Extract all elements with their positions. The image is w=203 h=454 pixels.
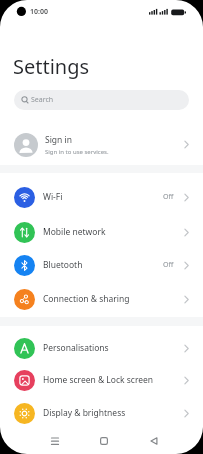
button[interactable]: Bluetooth xyxy=(0,248,203,282)
staticText: Mobile network xyxy=(43,226,106,238)
button[interactable]: Connection & sharing xyxy=(0,282,203,316)
button[interactable]: Personalisations xyxy=(0,331,203,365)
staticText: 10:00 xyxy=(30,7,48,17)
staticText: Display & brightness xyxy=(43,407,126,419)
button[interactable] xyxy=(41,428,69,454)
button[interactable]: Search xyxy=(14,90,189,110)
staticText: Personalisations xyxy=(43,342,109,354)
staticText: Sign in to use services. xyxy=(45,148,109,156)
button[interactable] xyxy=(90,428,118,454)
button[interactable]: Sign in xyxy=(0,126,203,163)
button[interactable]: Mobile network xyxy=(0,215,203,249)
button[interactable]: Display & brightness xyxy=(0,396,203,430)
staticText: Settings xyxy=(13,53,90,80)
button[interactable]: Wi-Fi xyxy=(0,180,203,214)
staticText: Off xyxy=(163,260,174,270)
staticText: Wi-Fi xyxy=(43,191,63,203)
staticText: Sign in xyxy=(45,134,72,146)
button[interactable] xyxy=(140,428,168,454)
staticText: Home screen & Lock screen xyxy=(43,374,154,386)
staticText: Bluetooth xyxy=(43,259,83,271)
staticText: Connection & sharing xyxy=(43,293,130,305)
button[interactable]: Home screen & Lock screen xyxy=(0,363,203,397)
staticText: Off xyxy=(163,192,174,202)
staticText: Search xyxy=(31,95,54,105)
